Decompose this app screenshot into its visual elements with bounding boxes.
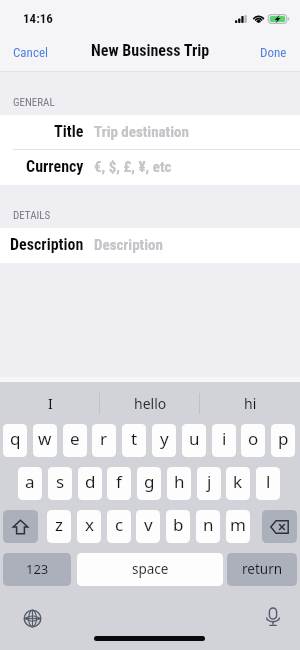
button[interactable]: x [77,510,101,543]
button[interactable]: r [92,424,116,457]
staticText: 123 [26,560,49,578]
staticText: hi [244,394,257,413]
staticText: l [266,470,271,493]
button[interactable]: c [107,510,131,543]
button[interactable]: g [137,467,161,500]
staticText: m [230,513,246,536]
staticText: b [173,513,184,536]
button[interactable]: space [77,553,223,586]
button[interactable]: s [48,467,72,500]
button[interactable]: return [227,553,297,586]
button[interactable]: Currency [0,150,300,185]
button[interactable]: v [136,510,160,543]
button[interactable]: Dictation [263,607,283,627]
staticText: r [100,427,108,450]
staticText: Description [94,236,163,254]
staticText: f [116,470,122,493]
staticText: Description [10,235,84,254]
button[interactable]: Title [0,115,300,150]
button[interactable]: Done [247,37,300,68]
button[interactable]: hi [200,382,300,424]
staticText: x [85,513,94,536]
staticText: z [55,513,63,536]
staticText: space [132,560,169,578]
staticText: n [203,513,214,536]
button[interactable]: I [0,382,100,424]
staticText: Currency [26,157,84,176]
staticText: e [70,427,80,450]
staticText: Cancel [13,45,48,60]
button[interactable]: b [166,510,190,543]
staticText: u [189,427,200,450]
button[interactable]: Switch keyboard [22,608,42,628]
button[interactable]: i [212,424,236,457]
button[interactable]: y [152,424,176,457]
staticText: y [160,427,169,450]
button[interactable]: n [196,510,220,543]
staticText: c [115,513,124,536]
staticText: hello [134,394,167,413]
staticText: p [278,427,289,450]
staticText: New Business Trip [91,41,210,60]
button[interactable]: 123 [3,553,71,586]
button[interactable]: d [78,467,102,500]
staticText: Title [54,122,84,141]
button[interactable]: z [47,510,71,543]
staticText: 14:16 [23,11,53,26]
button[interactable]: e [63,424,87,457]
staticText: k [233,470,243,493]
button[interactable]: l [256,467,280,500]
staticText: I [48,394,53,413]
button[interactable]: o [241,424,265,457]
staticText: g [144,470,155,493]
staticText: DETAILS [13,209,51,222]
button[interactable]: Cancel [0,37,61,68]
staticText: j [207,470,212,493]
button[interactable]: u [182,424,206,457]
button[interactable]: Shift [3,510,38,543]
button[interactable]: w [33,424,57,457]
button[interactable]: Backspace [262,510,297,543]
staticText: w [38,427,52,450]
button[interactable]: k [226,467,250,500]
button[interactable]: j [197,467,221,500]
staticText: Done [260,45,287,60]
staticText: o [248,427,259,450]
button[interactable]: h [167,467,191,500]
button[interactable]: p [271,424,295,457]
staticText: s [56,470,65,493]
button[interactable]: q [3,424,27,457]
staticText: h [174,470,185,493]
button[interactable]: a [18,467,42,500]
staticText: Trip destination [94,123,189,141]
button[interactable]: t [122,424,146,457]
staticText: d [85,470,96,493]
staticText: return [242,560,283,578]
button[interactable]: hello [100,382,200,424]
staticText: q [10,427,21,450]
staticText: v [144,513,153,536]
staticText: i [222,427,227,450]
button[interactable]: Description [0,228,300,263]
staticText: €, $, £, ¥, etc [94,158,172,176]
staticText: GENERAL [13,96,55,109]
staticText: a [25,470,35,493]
button[interactable]: m [226,510,250,543]
staticText: t [131,427,138,450]
button[interactable]: f [107,467,131,500]
